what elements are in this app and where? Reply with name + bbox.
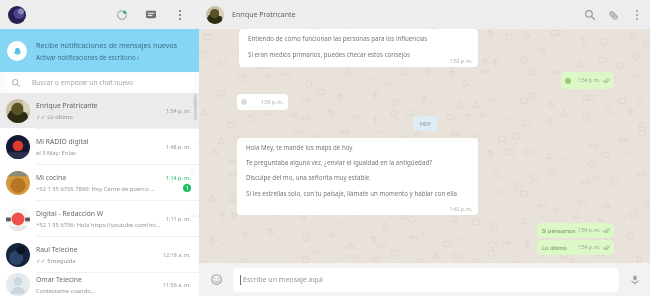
button[interactable]: Status — [112, 5, 132, 25]
staticText: 1:54 p. m. — [166, 107, 191, 114]
staticText: Enrique Pratricante — [232, 10, 296, 20]
staticText: 1:55 p. m. — [261, 99, 284, 106]
button[interactable]: Menu — [628, 6, 646, 24]
staticText: Enrique Pratricante — [36, 101, 98, 110]
button[interactable]: Mi cocina — [0, 165, 199, 200]
staticText: 1 — [186, 185, 189, 192]
staticText: Omar Telecine — [36, 275, 82, 284]
staticText: 1:54 p. m. — [578, 227, 601, 234]
staticText: Recibe notificaciones de mensajes nuevos — [36, 40, 178, 50]
staticText: Digital - Redacción W — [36, 209, 104, 218]
staticText: 12:18 a. m. — [163, 251, 191, 258]
button[interactable]: Menu — [170, 5, 190, 25]
staticText: Lo último — [542, 244, 567, 252]
button[interactable]: Omar Telecine — [0, 273, 199, 296]
staticText: Entiendo de cómo funcionan las personas … — [248, 34, 428, 42]
staticText: Buscar o empezar un chat nuevo — [32, 78, 134, 87]
staticText: el 3 May: Enlac — [36, 149, 76, 157]
staticText: Mi RADIO digital — [36, 137, 89, 146]
button[interactable]: Si pensamos — [537, 223, 614, 238]
staticText: +52 1 55 6756 7890: Hoy Carne de puerco … — [36, 185, 155, 193]
button[interactable]: Raul Telecine — [0, 237, 199, 272]
staticText: ✓✓ Lo último — [36, 113, 73, 121]
button[interactable]: Contact avatar — [206, 6, 224, 24]
staticText: 11:56 a. m. — [163, 281, 191, 288]
staticText: 1:54 p. m. — [578, 77, 601, 84]
button[interactable]: Mi RADIO digital — [0, 129, 199, 164]
button[interactable]: 1:55 p. m. — [237, 94, 288, 110]
button[interactable]: Enrique Pratricante — [0, 93, 199, 128]
button[interactable]: Emoji — [209, 272, 224, 287]
staticText: 1:48 p. m. — [166, 143, 191, 150]
staticText: ✓✓ Enseguida — [36, 257, 76, 265]
button[interactable]: Escribe un mensaje aquí — [233, 268, 619, 292]
button[interactable]: New chat — [141, 5, 161, 25]
staticText: Hola Mey, te mandé los maps dé hoy — [246, 143, 353, 151]
staticText: Disculpe del mo, una señorita muy establ… — [246, 173, 371, 181]
staticText: Mi cocina — [36, 173, 67, 182]
staticText: 1:52 p. m. — [450, 58, 473, 65]
staticText: Si pensamos — [542, 227, 576, 235]
staticText: Si les estrellas solo, con tu paisaje, l… — [246, 189, 458, 197]
button[interactable]: Profile — [8, 6, 26, 24]
staticText: +52 1 55 6756: Hola https://youtube.com/… — [36, 221, 162, 229]
button[interactable]: Voice message — [628, 273, 642, 287]
staticText: Raul Telecine — [36, 245, 78, 254]
button[interactable]: Entiendo de cómo funcionan las personas … — [239, 29, 478, 67]
staticText: HOY — [420, 120, 431, 127]
staticText: Activar notificaciones de escritorio › — [36, 53, 140, 61]
button[interactable]: Hola Mey, te mandé los maps dé hoy — [237, 138, 478, 215]
staticText: 1:11 p. m. — [166, 215, 191, 222]
staticText: 1:54 p. m. — [578, 244, 601, 251]
button[interactable]: Attach — [604, 6, 622, 24]
staticText: 1:42 p. m. — [450, 206, 473, 213]
staticText: Escribe un mensaje aquí — [243, 275, 323, 285]
button[interactable]: Buscar o empezar un chat nuevo — [5, 75, 194, 90]
button[interactable]: Recibe notificaciones de mensajes nuevos — [0, 29, 199, 72]
staticText: Si eran medios primarios, puedes checar … — [248, 50, 410, 58]
button[interactable]: Digital - Redacción W — [0, 201, 199, 236]
staticText: Contestame cuando... — [36, 287, 96, 295]
staticText: Te preguntaba alguna vez, ¿enviar el igu… — [246, 158, 432, 166]
button[interactable]: Lo último — [537, 240, 614, 255]
button[interactable]: Search — [581, 6, 599, 24]
staticText: 1:14 p. m. — [166, 174, 191, 181]
button[interactable]: 1:54 p. m. — [561, 72, 614, 89]
